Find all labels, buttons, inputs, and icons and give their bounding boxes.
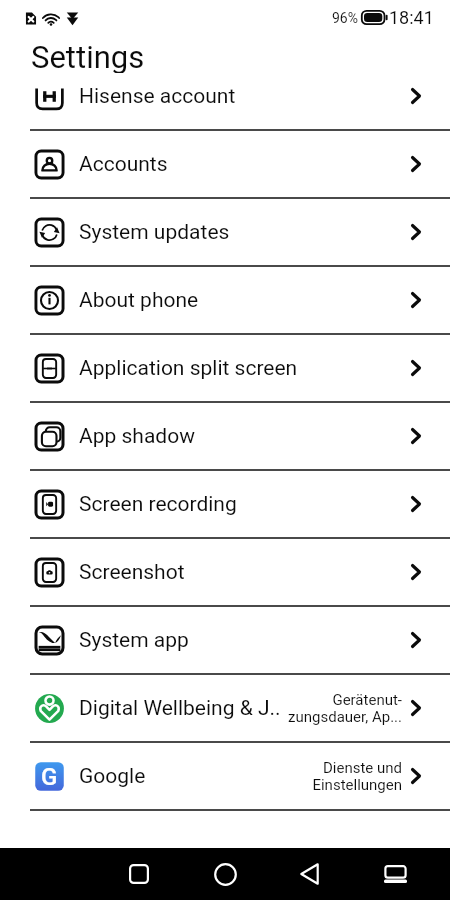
staticText: Accounts [79,152,168,177]
staticText: Application split screen [79,356,298,381]
button[interactable]: About phone [0,267,450,333]
button[interactable]: Recents [113,848,165,900]
staticText: App shadow [79,424,195,449]
button[interactable]: Home [199,848,251,900]
button[interactable]: App shadow [0,403,450,469]
button[interactable]: Back [283,848,335,900]
button[interactable]: Screen recording [0,471,450,537]
staticText: Google [79,764,146,789]
staticText: Hisense account [79,84,236,109]
staticText: Gerätenut- zungsdauer, Ap... [288,691,402,725]
staticText: 96% [332,10,358,26]
staticText: Screenshot [79,560,185,585]
staticText: About phone [79,288,199,313]
staticText: System updates [79,220,230,245]
button[interactable]: Hisense account [0,63,450,129]
button[interactable]: Screenshot [0,539,450,605]
button[interactable]: Application split screen [0,335,450,401]
staticText: Screen recording [79,492,237,517]
staticText: System app [79,628,189,653]
staticText: Digital Wellbeing & J.. [79,696,281,721]
button[interactable]: System app [0,607,450,673]
staticText: Settings [31,39,145,73]
button[interactable]: Digital Wellbeing & J.. [0,675,450,741]
staticText: G [41,763,58,791]
staticText: 18:41 [389,7,434,28]
button[interactable]: System updates [0,199,450,265]
button[interactable]: Accounts [0,131,450,197]
button[interactable]: Screen cast [369,848,421,900]
button[interactable]: G [0,743,450,809]
staticText: Dienste und Einstellungen [312,759,402,793]
